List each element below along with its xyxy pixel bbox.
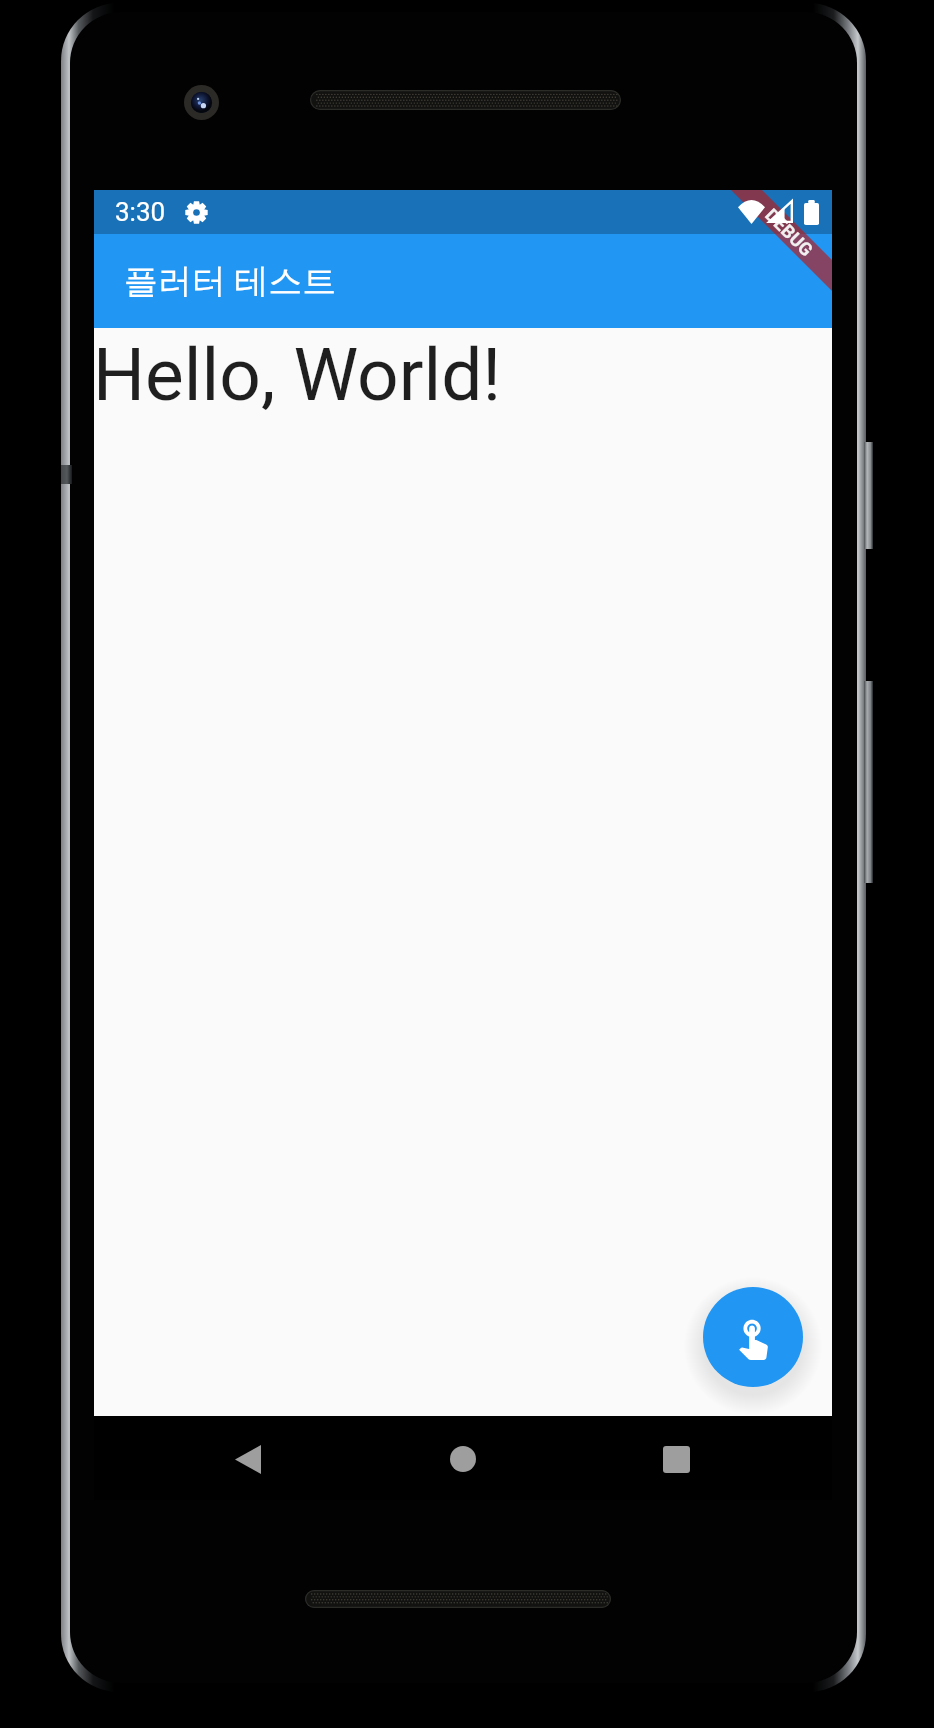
staticText: 플러터 테스트	[124, 260, 337, 303]
button[interactable]: Back	[214, 1425, 282, 1493]
staticText: DEBUG	[761, 204, 818, 261]
button[interactable]: Home	[429, 1425, 497, 1493]
button[interactable]: Tap	[703, 1287, 803, 1387]
staticText: 3:30	[115, 197, 166, 227]
button[interactable]: Recents	[642, 1425, 710, 1493]
staticText: Hello, World!	[93, 332, 502, 418]
